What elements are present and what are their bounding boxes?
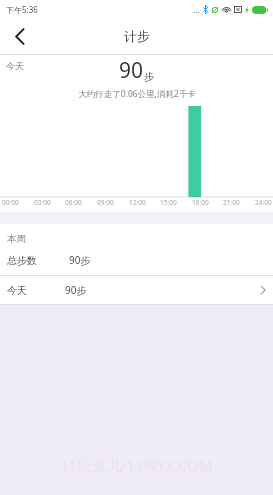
staticText: 90 [119, 56, 144, 85]
staticText: 90步 [65, 283, 87, 297]
staticText: 大约行走了0.06公里,消耗2千卡 [78, 88, 196, 100]
staticText: 00:00 [2, 198, 19, 207]
staticText: 09:00 [97, 198, 114, 207]
staticText: 21:00 [223, 198, 240, 207]
button[interactable]: Back [0, 18, 40, 54]
staticText: 15:00 [160, 198, 177, 207]
staticText: 03:00 [34, 198, 51, 207]
staticText: 下午5:36 [6, 4, 38, 15]
staticText: 90步 [69, 253, 91, 267]
staticText: 本周 [7, 233, 26, 245]
staticText: 今天 [6, 60, 24, 71]
staticText: 06:00 [65, 198, 82, 207]
staticText: 步 [144, 70, 154, 83]
staticText: 今天 [7, 284, 27, 297]
staticText: 11玩查儿·11WYX.COM [60, 455, 213, 475]
staticText: 24:00 [255, 198, 272, 207]
button[interactable]: 今天 [0, 276, 273, 304]
staticText: 18:00 [192, 198, 209, 207]
staticText: 总步数 [7, 254, 37, 267]
staticText: ... [193, 4, 200, 15]
button[interactable]: 总步数 [0, 245, 273, 275]
staticText: 12:00 [129, 198, 146, 207]
staticText: 计步 [124, 28, 150, 44]
